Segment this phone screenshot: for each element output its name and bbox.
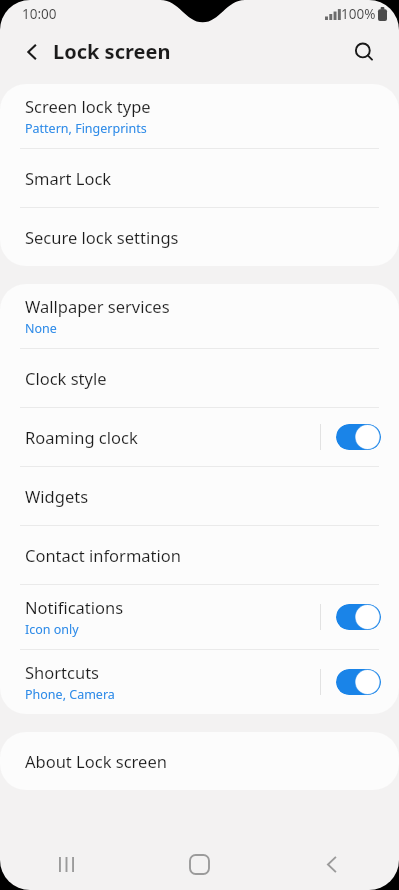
staticText: None bbox=[25, 320, 57, 337]
button[interactable]: Clock style bbox=[0, 349, 399, 407]
button[interactable]: Secure lock settings bbox=[0, 208, 399, 266]
staticText: Secure lock settings bbox=[25, 226, 179, 248]
staticText: Wallpaper services bbox=[25, 295, 170, 317]
staticText: Notifications bbox=[25, 596, 124, 618]
staticText: 10:00 bbox=[22, 5, 57, 23]
staticText: Shortcuts bbox=[25, 661, 99, 683]
button[interactable]: Wallpaper services bbox=[0, 284, 399, 348]
button[interactable]: Back bbox=[266, 838, 399, 890]
staticText: Lock screen bbox=[53, 38, 171, 65]
button[interactable]: Shortcuts bbox=[0, 650, 399, 714]
button[interactable]: Toggle bbox=[336, 669, 381, 695]
button[interactable]: Back bbox=[12, 31, 54, 73]
button[interactable]: Roaming clock bbox=[0, 408, 399, 466]
button[interactable]: Widgets bbox=[0, 467, 399, 525]
staticText: Contact information bbox=[25, 544, 181, 566]
staticText: About Lock screen bbox=[25, 750, 167, 772]
button[interactable]: Screen lock type bbox=[0, 84, 399, 148]
staticText: Pattern, Fingerprints bbox=[25, 120, 147, 137]
button[interactable]: About Lock screen bbox=[0, 732, 399, 790]
button[interactable]: Contact information bbox=[0, 526, 399, 584]
staticText: Widgets bbox=[25, 485, 89, 507]
staticText: Icon only bbox=[25, 621, 79, 638]
staticText: Clock style bbox=[25, 367, 107, 389]
button[interactable]: Toggle bbox=[336, 424, 381, 450]
staticText: Screen lock type bbox=[25, 95, 151, 117]
staticText: Phone, Camera bbox=[25, 686, 115, 703]
staticText: 100% bbox=[341, 5, 376, 23]
button[interactable]: Notifications bbox=[0, 585, 399, 649]
staticText: Roaming clock bbox=[25, 426, 138, 448]
button[interactable]: Home bbox=[133, 838, 266, 890]
staticText: Smart Lock bbox=[25, 167, 112, 189]
button[interactable]: Smart Lock bbox=[0, 149, 399, 207]
button[interactable]: Search bbox=[343, 31, 385, 73]
button[interactable]: Recents bbox=[0, 838, 133, 890]
button[interactable]: Toggle bbox=[336, 604, 381, 630]
